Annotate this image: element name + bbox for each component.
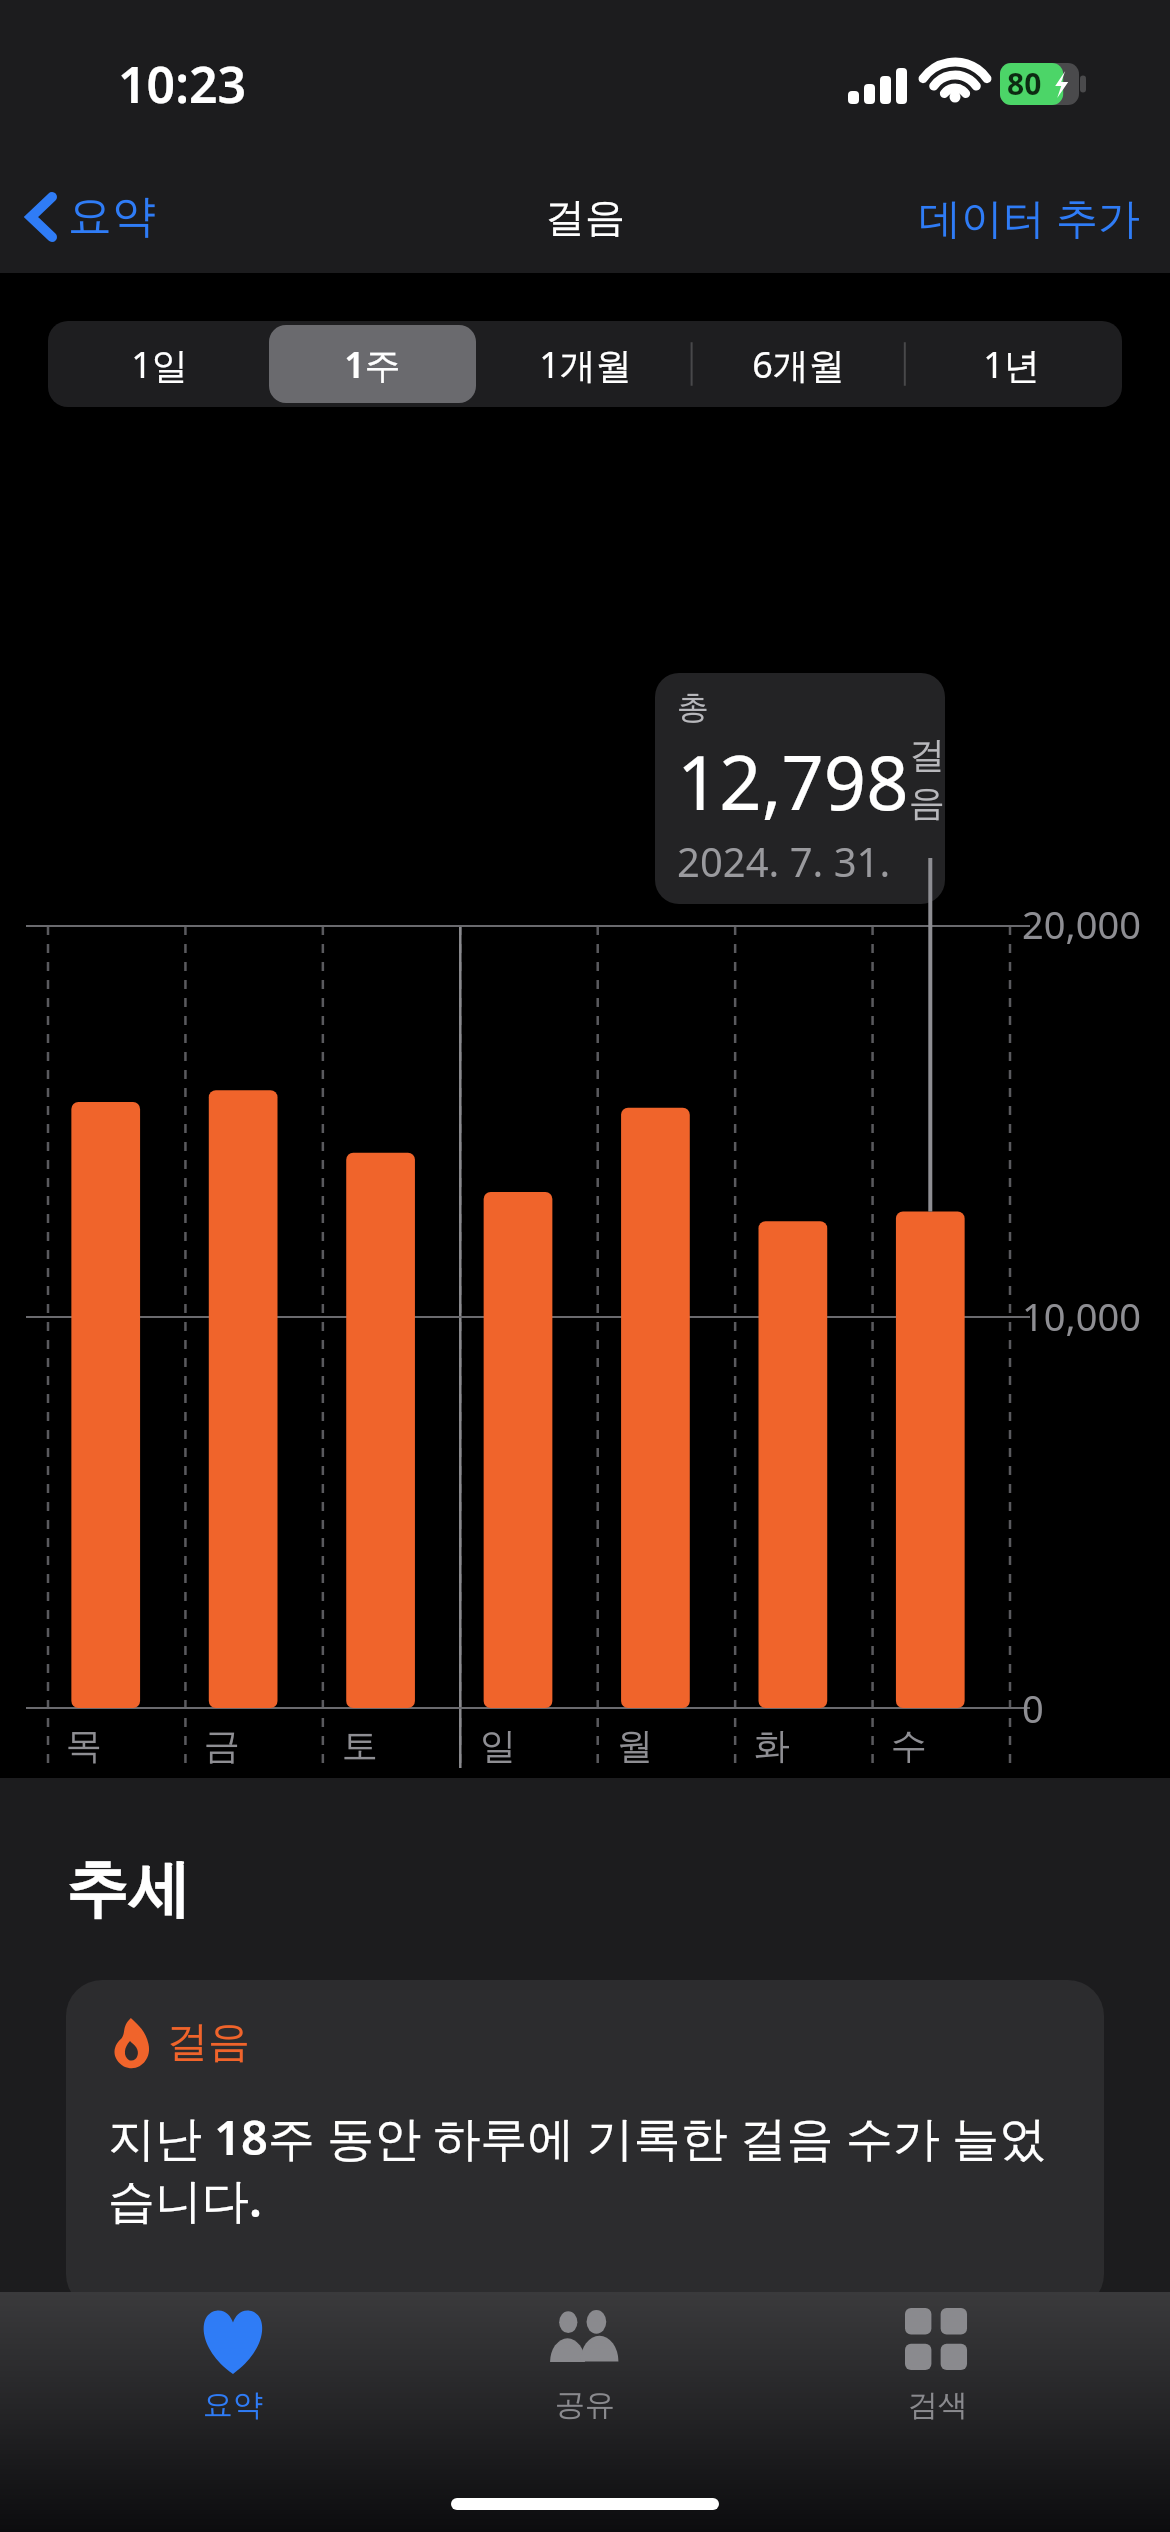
staticText: 80	[1007, 63, 1042, 104]
button[interactable]: 1년	[908, 325, 1115, 403]
staticText: 추세	[66, 1850, 190, 1928]
staticText: 공유	[555, 2386, 615, 2424]
staticText: 지난 18주 동안 하루에 기록한 걸음 수가 늘었습니다.	[108, 2105, 1062, 2231]
staticText: 1개월	[539, 340, 632, 389]
button[interactable]: 6개월	[695, 325, 902, 403]
staticText: 1주	[344, 340, 401, 389]
staticText: 0	[1022, 1682, 1044, 1734]
staticText: 데이터 추가	[919, 188, 1140, 245]
staticText: 요약	[68, 189, 156, 244]
other: 검색	[905, 2308, 971, 2374]
button[interactable]: 1주	[269, 325, 476, 403]
staticText: 검색	[908, 2386, 968, 2424]
staticText: 2024. 7. 31.	[677, 834, 891, 888]
button[interactable]: 요약	[113, 2292, 353, 2424]
staticText: 추세	[94, 1898, 174, 1948]
staticText: 걸음	[545, 192, 625, 242]
staticText: 10:23	[118, 50, 247, 118]
button[interactable]: 1일	[55, 325, 263, 403]
staticText: 걸음	[166, 2016, 250, 2069]
other: 공유	[547, 2308, 623, 2374]
button[interactable]: 걸음	[66, 1980, 1104, 2310]
staticText: 금	[204, 1723, 240, 1768]
staticText: 월	[617, 1723, 653, 1768]
staticText: 토	[342, 1723, 378, 1768]
staticText: 12,798	[677, 731, 909, 832]
staticText: 걸음	[909, 732, 925, 826]
staticText: 1일	[131, 340, 188, 389]
staticText: 6개월	[752, 340, 845, 389]
staticText: 목	[66, 1723, 102, 1768]
button[interactable]: 요약	[0, 175, 176, 258]
other: 요약	[195, 2308, 271, 2374]
staticText: 20,000	[1022, 898, 1141, 950]
staticText: 10,000	[1022, 1290, 1141, 1342]
button[interactable]: 데이터 추가	[899, 174, 1170, 259]
button[interactable]: 검색	[818, 2292, 1058, 2424]
button[interactable]: 1개월	[482, 325, 689, 403]
staticText: 화	[754, 1723, 790, 1768]
staticText: 1년	[983, 340, 1040, 389]
button[interactable]: 추세	[62, 1853, 1108, 1993]
staticText: 요약	[203, 2386, 263, 2424]
button[interactable]: 공유	[465, 2292, 705, 2424]
staticText: 일	[480, 1723, 516, 1768]
staticText: 수	[891, 1723, 927, 1768]
staticText: 총	[677, 687, 709, 727]
